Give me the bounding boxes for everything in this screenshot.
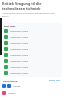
staticText: Kritiek Vragung til die technoliesen tic…: [2, 1, 62, 11]
staticText: Application name: [10, 54, 28, 57]
staticText: Application name: [10, 66, 28, 69]
staticText: Application name: [10, 72, 28, 75]
staticText: Application name: [10, 42, 28, 45]
staticText: Application name: [10, 48, 28, 51]
button[interactable]: Application name: [4, 52, 61, 58]
staticText: Gerelateerd: [3, 79, 18, 82]
button[interactable]: Application name: [4, 28, 61, 34]
staticText: Best apps: [4, 24, 16, 27]
staticText: Muziek: [8, 92, 16, 95]
staticText: Application name: [10, 36, 28, 39]
staticText: Bekijk alles: [49, 79, 61, 82]
button[interactable]: Application name: [4, 64, 61, 70]
button[interactable]: Bekijk alles: [49, 79, 61, 82]
button[interactable]: Application name: [4, 34, 61, 40]
button[interactable]: Application name: [4, 46, 61, 52]
button[interactable]: Nieuws: [0, 83, 64, 89]
button[interactable]: Application name: [4, 58, 61, 64]
staticText: Application name: [10, 60, 28, 63]
button[interactable]: Application name: [4, 40, 61, 46]
staticText: Application name: [10, 30, 28, 33]
staticText: Nieuws: [13, 85, 21, 88]
button[interactable]: Application name: [4, 70, 61, 76]
button[interactable]: Muziek: [0, 90, 64, 96]
staticText: Nechtilibaten losion instrumpin gantanim…: [2, 12, 62, 18]
